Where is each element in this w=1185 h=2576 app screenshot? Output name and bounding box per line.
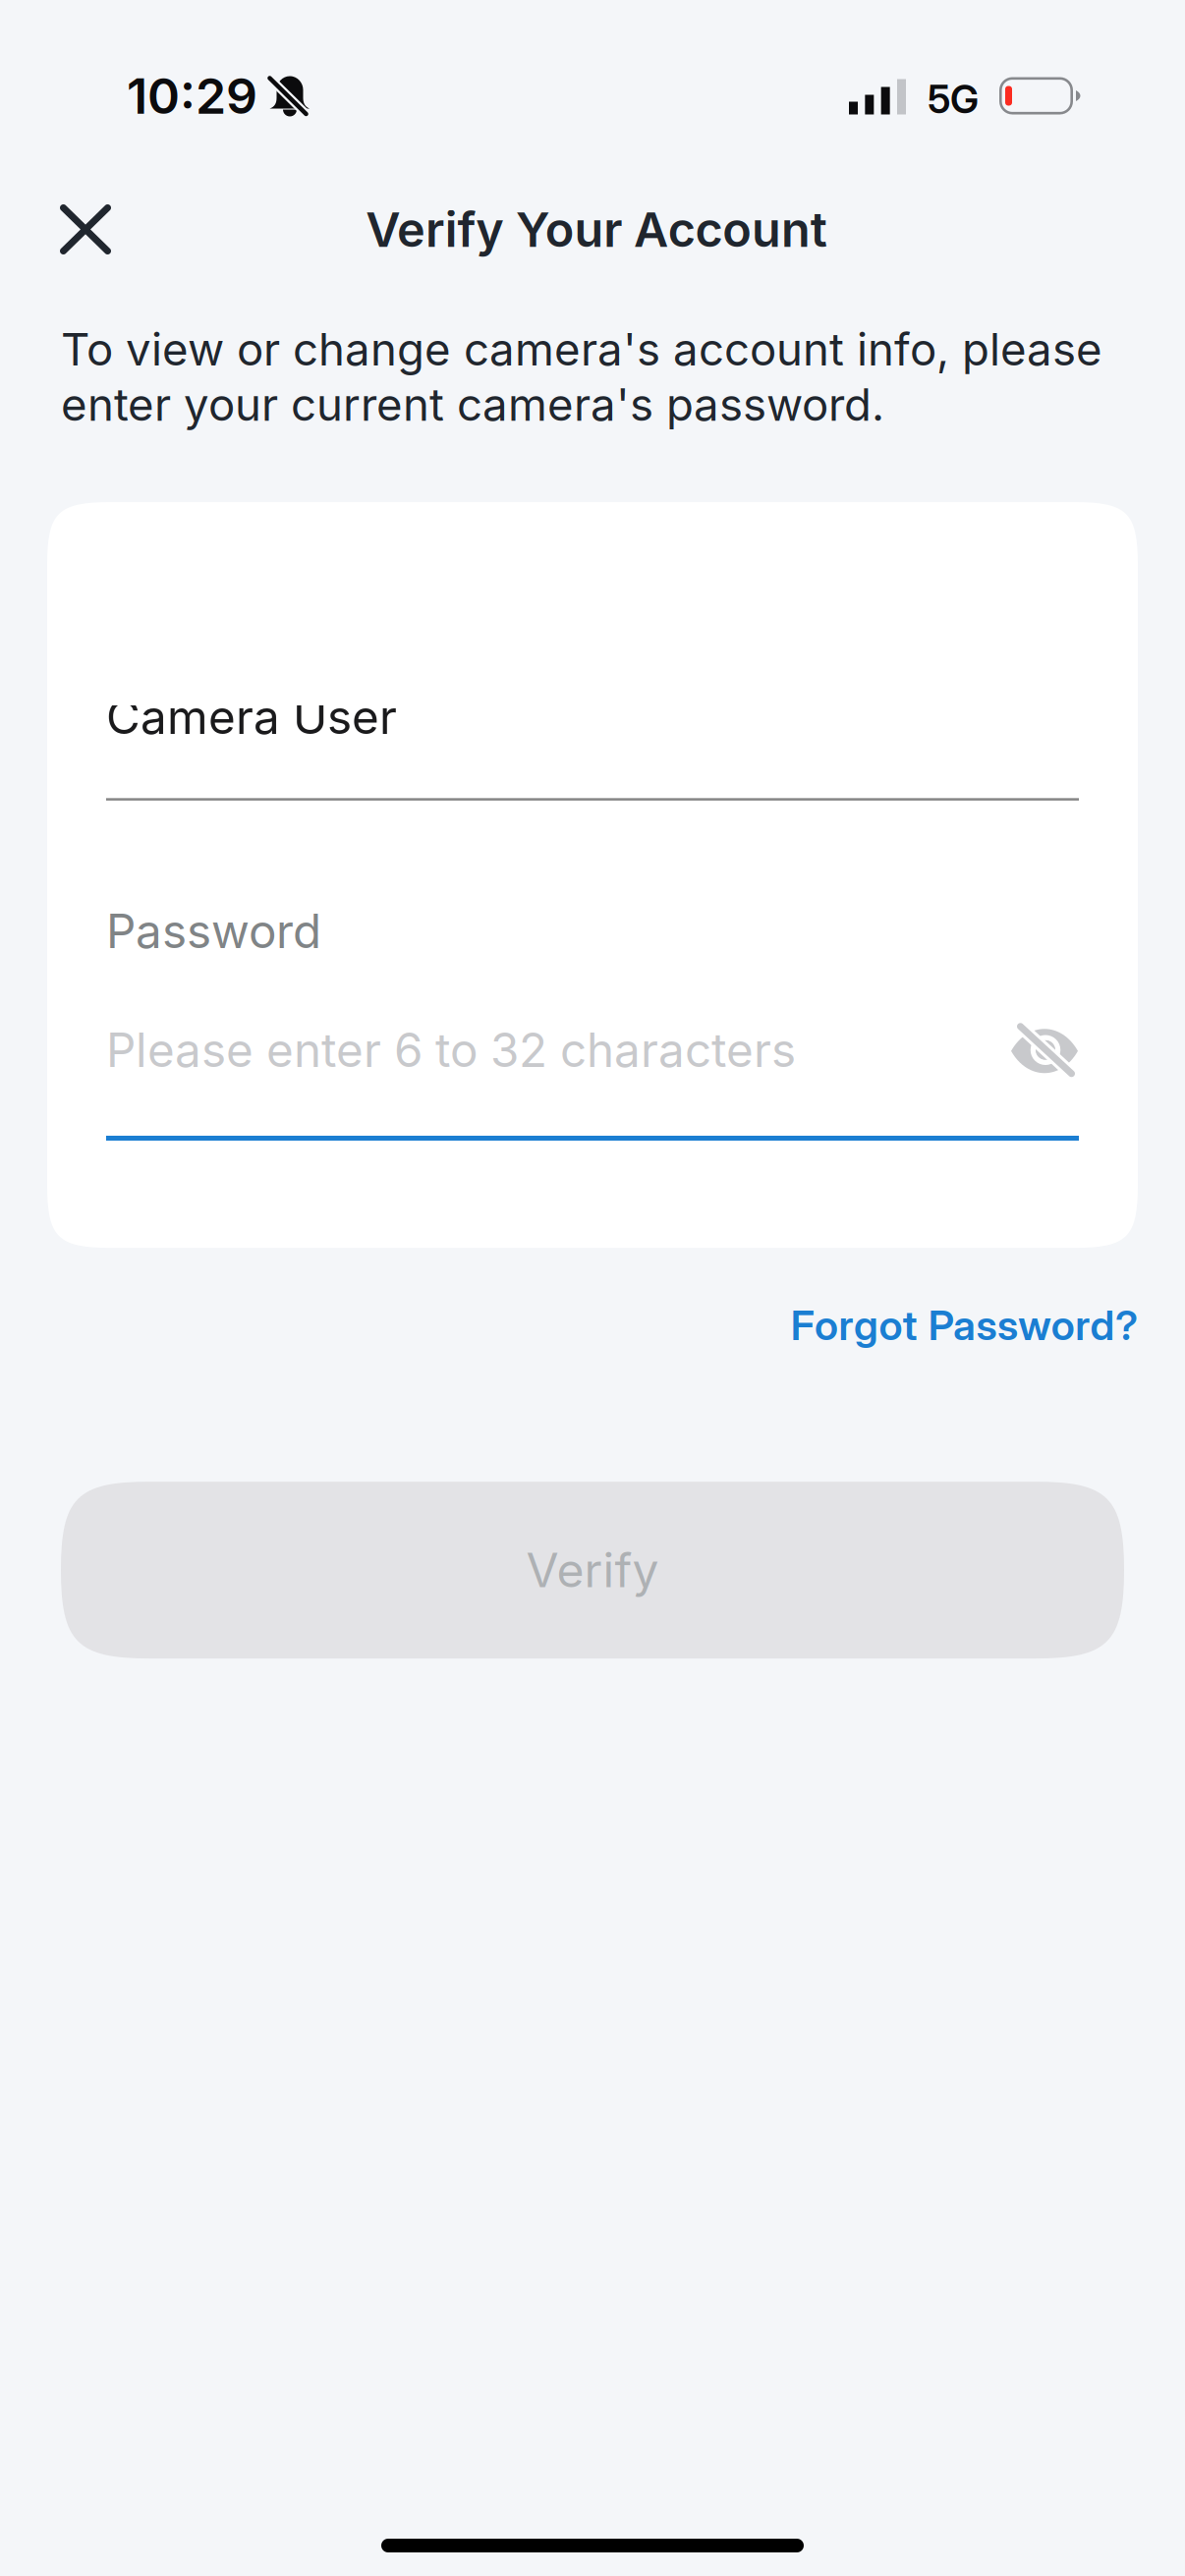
staticText: Verify [526, 1542, 659, 1599]
staticText: enter your current camera's password. [61, 377, 884, 431]
button[interactable]: Show password [1010, 1023, 1079, 1078]
staticText: Please enter 6 to 32 characters [106, 1022, 796, 1078]
staticText: Password [106, 903, 321, 959]
button[interactable]: Verify [61, 1482, 1124, 1658]
staticText: 10:29 [127, 66, 257, 126]
staticText: Forgot Password? [791, 1300, 1138, 1350]
button[interactable]: Close [21, 189, 150, 270]
staticText: Verify Your Account [366, 201, 827, 258]
staticText: 5G [928, 76, 979, 123]
button[interactable]: Forgot Password? [715, 1288, 1138, 1362]
staticText: To view or change camera's account info,… [61, 322, 1102, 376]
staticText: Camera User [106, 689, 397, 745]
